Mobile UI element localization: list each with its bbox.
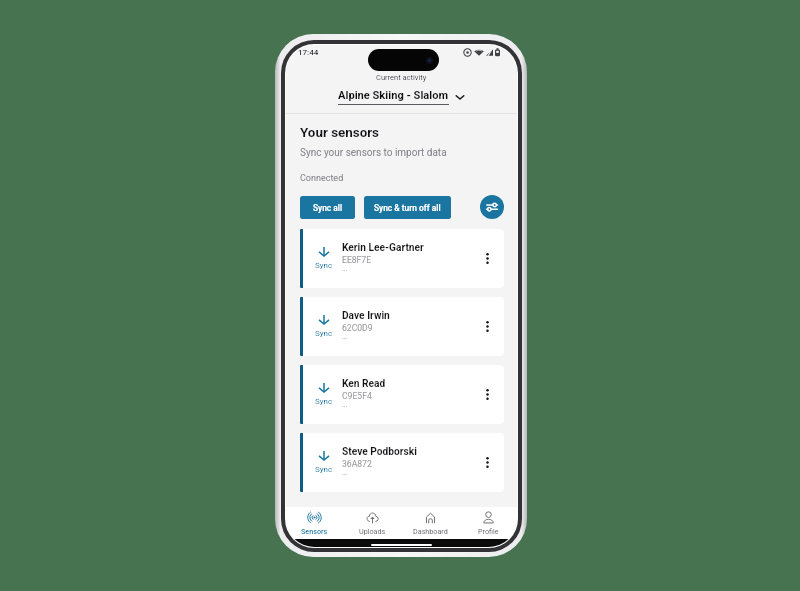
staticText: 17:44 (298, 48, 319, 57)
staticText: Connected (300, 173, 344, 184)
button[interactable]: More options (471, 297, 504, 356)
button[interactable]: Sync & turn off all (364, 196, 451, 219)
staticText: Dashboard (413, 527, 448, 535)
staticText: C9E5F4 (342, 391, 372, 401)
staticText: Uploads (359, 527, 386, 535)
staticText: Kerin Lee-Gartner (342, 242, 424, 254)
staticText: ... (342, 333, 348, 341)
button[interactable]: Sync all (300, 196, 355, 219)
staticText: EE8F7E (342, 255, 372, 265)
button[interactable]: More options (471, 433, 504, 492)
staticText: Sync your sensors to import data (300, 147, 447, 159)
staticText: Your sensors (300, 125, 379, 141)
staticText: Alpine Skiing - Slalom (338, 89, 449, 102)
button[interactable]: Sensor settings (480, 195, 504, 219)
staticText: 36A872 (342, 459, 372, 469)
staticText: Sync & turn off all (374, 203, 441, 213)
staticText: Steve Podborski (342, 446, 417, 458)
staticText: Sync (315, 329, 333, 338)
staticText: 62C0D9 (342, 323, 373, 333)
button[interactable]: Profile (459, 507, 517, 539)
staticText: Sensors (301, 527, 328, 535)
staticText: Dave Irwin (342, 310, 390, 322)
button[interactable]: Sync (300, 433, 504, 492)
button[interactable]: Uploads (343, 507, 401, 539)
button[interactable]: Sync (300, 229, 504, 288)
staticText: Sync (315, 465, 333, 474)
button[interactable]: Alpine Skiing - Slalom (338, 89, 465, 105)
staticText: ... (342, 469, 348, 477)
button[interactable]: Sync (300, 365, 504, 424)
button[interactable]: Dashboard (401, 507, 459, 539)
staticText: ... (342, 265, 348, 273)
button[interactable]: Sensors (286, 507, 343, 539)
staticText: Sync all (313, 203, 343, 213)
staticText: Current activity (376, 73, 427, 82)
staticText: Sync (315, 261, 333, 270)
staticText: Profile (478, 527, 499, 535)
staticText: ... (342, 401, 348, 409)
button[interactable]: More options (471, 365, 504, 424)
staticText: Ken Read (342, 378, 386, 390)
staticText: Sync (315, 397, 333, 406)
button[interactable]: Sync (300, 297, 504, 356)
button[interactable]: More options (471, 229, 504, 288)
